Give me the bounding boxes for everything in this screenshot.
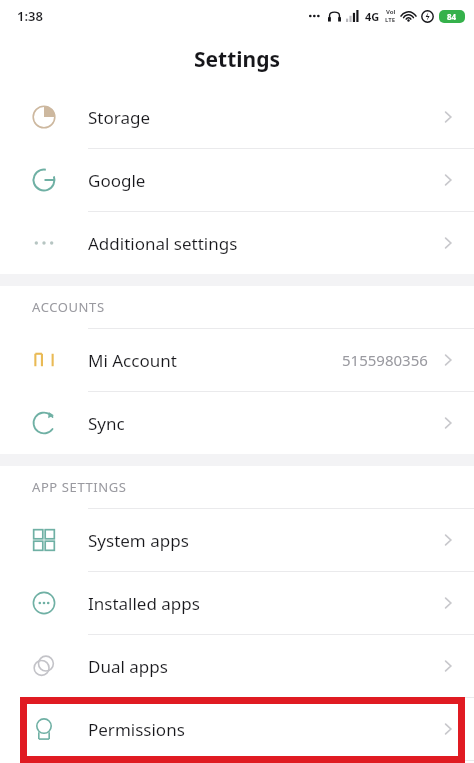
staticText: Google [88,169,146,192]
button[interactable]: System apps [0,509,474,571]
button[interactable]: Dual apps [0,635,474,697]
staticText: Additional settings [88,232,238,255]
staticText: Installed apps [88,592,200,615]
button[interactable]: Installed apps [0,572,474,634]
staticText: Dual apps [88,655,168,678]
staticText: Mi Account [88,349,177,372]
button[interactable]: Storage [0,86,474,148]
staticText: Storage [88,106,151,129]
staticText: Vol [386,8,396,16]
button[interactable]: Additional settings [0,212,474,274]
button[interactable]: Mi Account [0,329,474,391]
staticText: Permissions [88,718,185,741]
staticText: System apps [88,529,189,552]
staticText: LTE [385,16,396,24]
staticText: 5155980356 [342,350,428,370]
staticText: APP SETTINGS [32,478,127,496]
staticText: 84 [447,11,457,22]
button[interactable]: Google [0,149,474,211]
staticText: 1:38 [17,7,43,25]
staticText: Settings [194,45,281,74]
staticText: Sync [88,412,125,435]
staticText: 4G [365,9,380,24]
button[interactable]: Permissions [0,698,474,760]
button[interactable]: Sync [0,392,474,454]
staticText: ACCOUNTS [32,298,105,316]
